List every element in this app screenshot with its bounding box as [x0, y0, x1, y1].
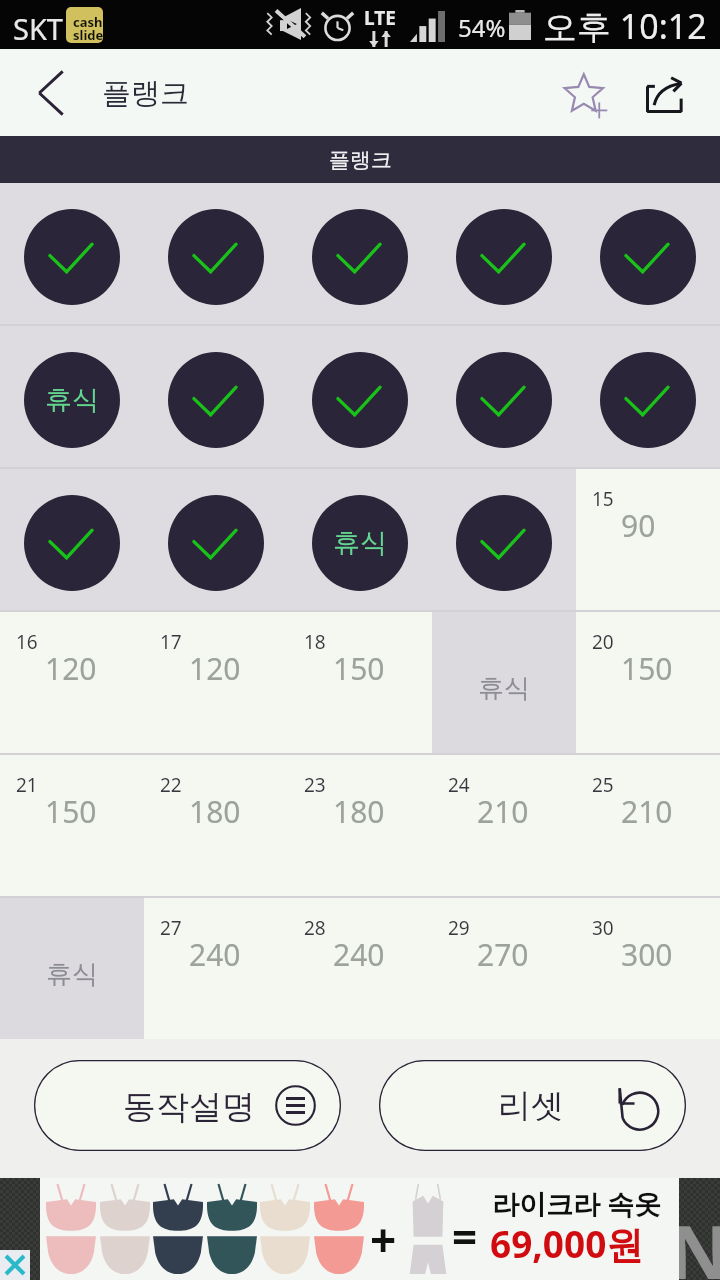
button[interactable]: Day 12 completed [144, 469, 288, 610]
button[interactable]: Day 11 completed [0, 469, 144, 610]
staticText: 플랭크 [329, 147, 392, 173]
button[interactable]: 리셋 [379, 1060, 686, 1151]
button[interactable]: Day 6 rest [0, 326, 144, 467]
button[interactable]: Day 24, 210 seconds [432, 755, 576, 896]
button[interactable]: Day 19 rest [432, 612, 576, 753]
staticText: 휴식 [333, 526, 387, 560]
staticText: 동작설명 [123, 1086, 255, 1128]
staticText: 오후 10:12 [543, 3, 707, 49]
button[interactable]: Close ad [0, 1250, 30, 1280]
staticText: 플랭크 [102, 75, 189, 112]
staticText: 150 [45, 791, 97, 832]
staticText: 150 [621, 648, 673, 689]
button[interactable]: Day 10 completed [576, 326, 720, 467]
staticText: 54% [458, 11, 506, 44]
staticText: 21 [16, 772, 38, 798]
staticText: 24 [448, 772, 470, 798]
button[interactable]: Day 9 completed [432, 326, 576, 467]
staticText: + [370, 1208, 397, 1271]
staticText: 150 [333, 648, 385, 689]
staticText: 180 [189, 791, 241, 832]
staticText: 27 [160, 915, 182, 941]
staticText: 16 [16, 629, 38, 655]
button[interactable]: Day 18, 150 seconds [288, 612, 432, 753]
button[interactable]: Day 23, 180 seconds [288, 755, 432, 896]
staticText: 300 [621, 934, 673, 975]
button[interactable]: Day 26 rest [0, 898, 144, 1039]
button[interactable]: Day 3 completed [288, 183, 432, 324]
staticText: 120 [45, 648, 97, 689]
staticText: 휴식 [45, 383, 99, 417]
button[interactable]: 동작설명 [34, 1060, 341, 1151]
staticText: 18 [304, 629, 326, 655]
button[interactable]: Day 13 rest [288, 469, 432, 610]
button[interactable]: Day 15, 90 seconds [576, 469, 720, 610]
button[interactable]: Day 25, 210 seconds [576, 755, 720, 896]
button[interactable]: Day 20, 150 seconds [576, 612, 720, 753]
staticText: 120 [189, 648, 241, 689]
staticText: slide [73, 26, 103, 43]
staticText: 휴식 [46, 958, 98, 991]
button[interactable]: Back [14, 49, 88, 136]
button[interactable]: Day 22, 180 seconds [144, 755, 288, 896]
staticText: 25 [592, 772, 614, 798]
staticText: 210 [621, 791, 673, 832]
button[interactable]: Day 27, 240 seconds [144, 898, 288, 1039]
button[interactable]: Day 8 completed [288, 326, 432, 467]
staticText: N [679, 1200, 710, 1280]
staticText: 29 [448, 915, 470, 941]
button[interactable]: Day 1 completed [0, 183, 144, 324]
staticText: 180 [333, 791, 385, 832]
staticText: = [452, 1206, 478, 1266]
button[interactable]: Day 29, 270 seconds [432, 898, 576, 1039]
button[interactable]: Day 21, 150 seconds [0, 755, 144, 896]
staticText: 90 [621, 505, 656, 546]
staticText: 30 [592, 915, 614, 941]
staticText: 270 [477, 934, 529, 975]
button[interactable]: Day 2 completed [144, 183, 288, 324]
button[interactable]: Day 7 completed [144, 326, 288, 467]
staticText: 리셋 [498, 1085, 564, 1127]
button[interactable]: Day 28, 240 seconds [288, 898, 432, 1039]
button[interactable]: Day 14 completed [432, 469, 576, 610]
button[interactable]: Day 4 completed [432, 183, 576, 324]
staticText: 28 [304, 915, 326, 941]
staticText: 20 [592, 629, 614, 655]
staticText: 69,000원 [490, 1218, 644, 1269]
staticText: 240 [189, 934, 241, 975]
button[interactable]: Add to favourites [542, 49, 624, 136]
staticText: 240 [333, 934, 385, 975]
staticText: cash [73, 13, 103, 31]
staticText: 15 [592, 486, 614, 512]
staticText: 22 [160, 772, 182, 798]
button[interactable]: Day 16, 120 seconds [0, 612, 144, 753]
button[interactable]: Share [628, 49, 710, 136]
staticText: 17 [160, 629, 182, 655]
staticText: 라이크라 속옷 [492, 1185, 662, 1222]
button[interactable]: Day 5 completed [576, 183, 720, 324]
button[interactable]: Day 30, 300 seconds [576, 898, 720, 1039]
staticText: 23 [304, 772, 326, 798]
staticText: 휴식 [478, 672, 530, 705]
staticText: SKT [13, 9, 63, 48]
button[interactable]: Day 17, 120 seconds [144, 612, 288, 753]
staticText: LTE [364, 5, 396, 31]
staticText: 210 [477, 791, 529, 832]
